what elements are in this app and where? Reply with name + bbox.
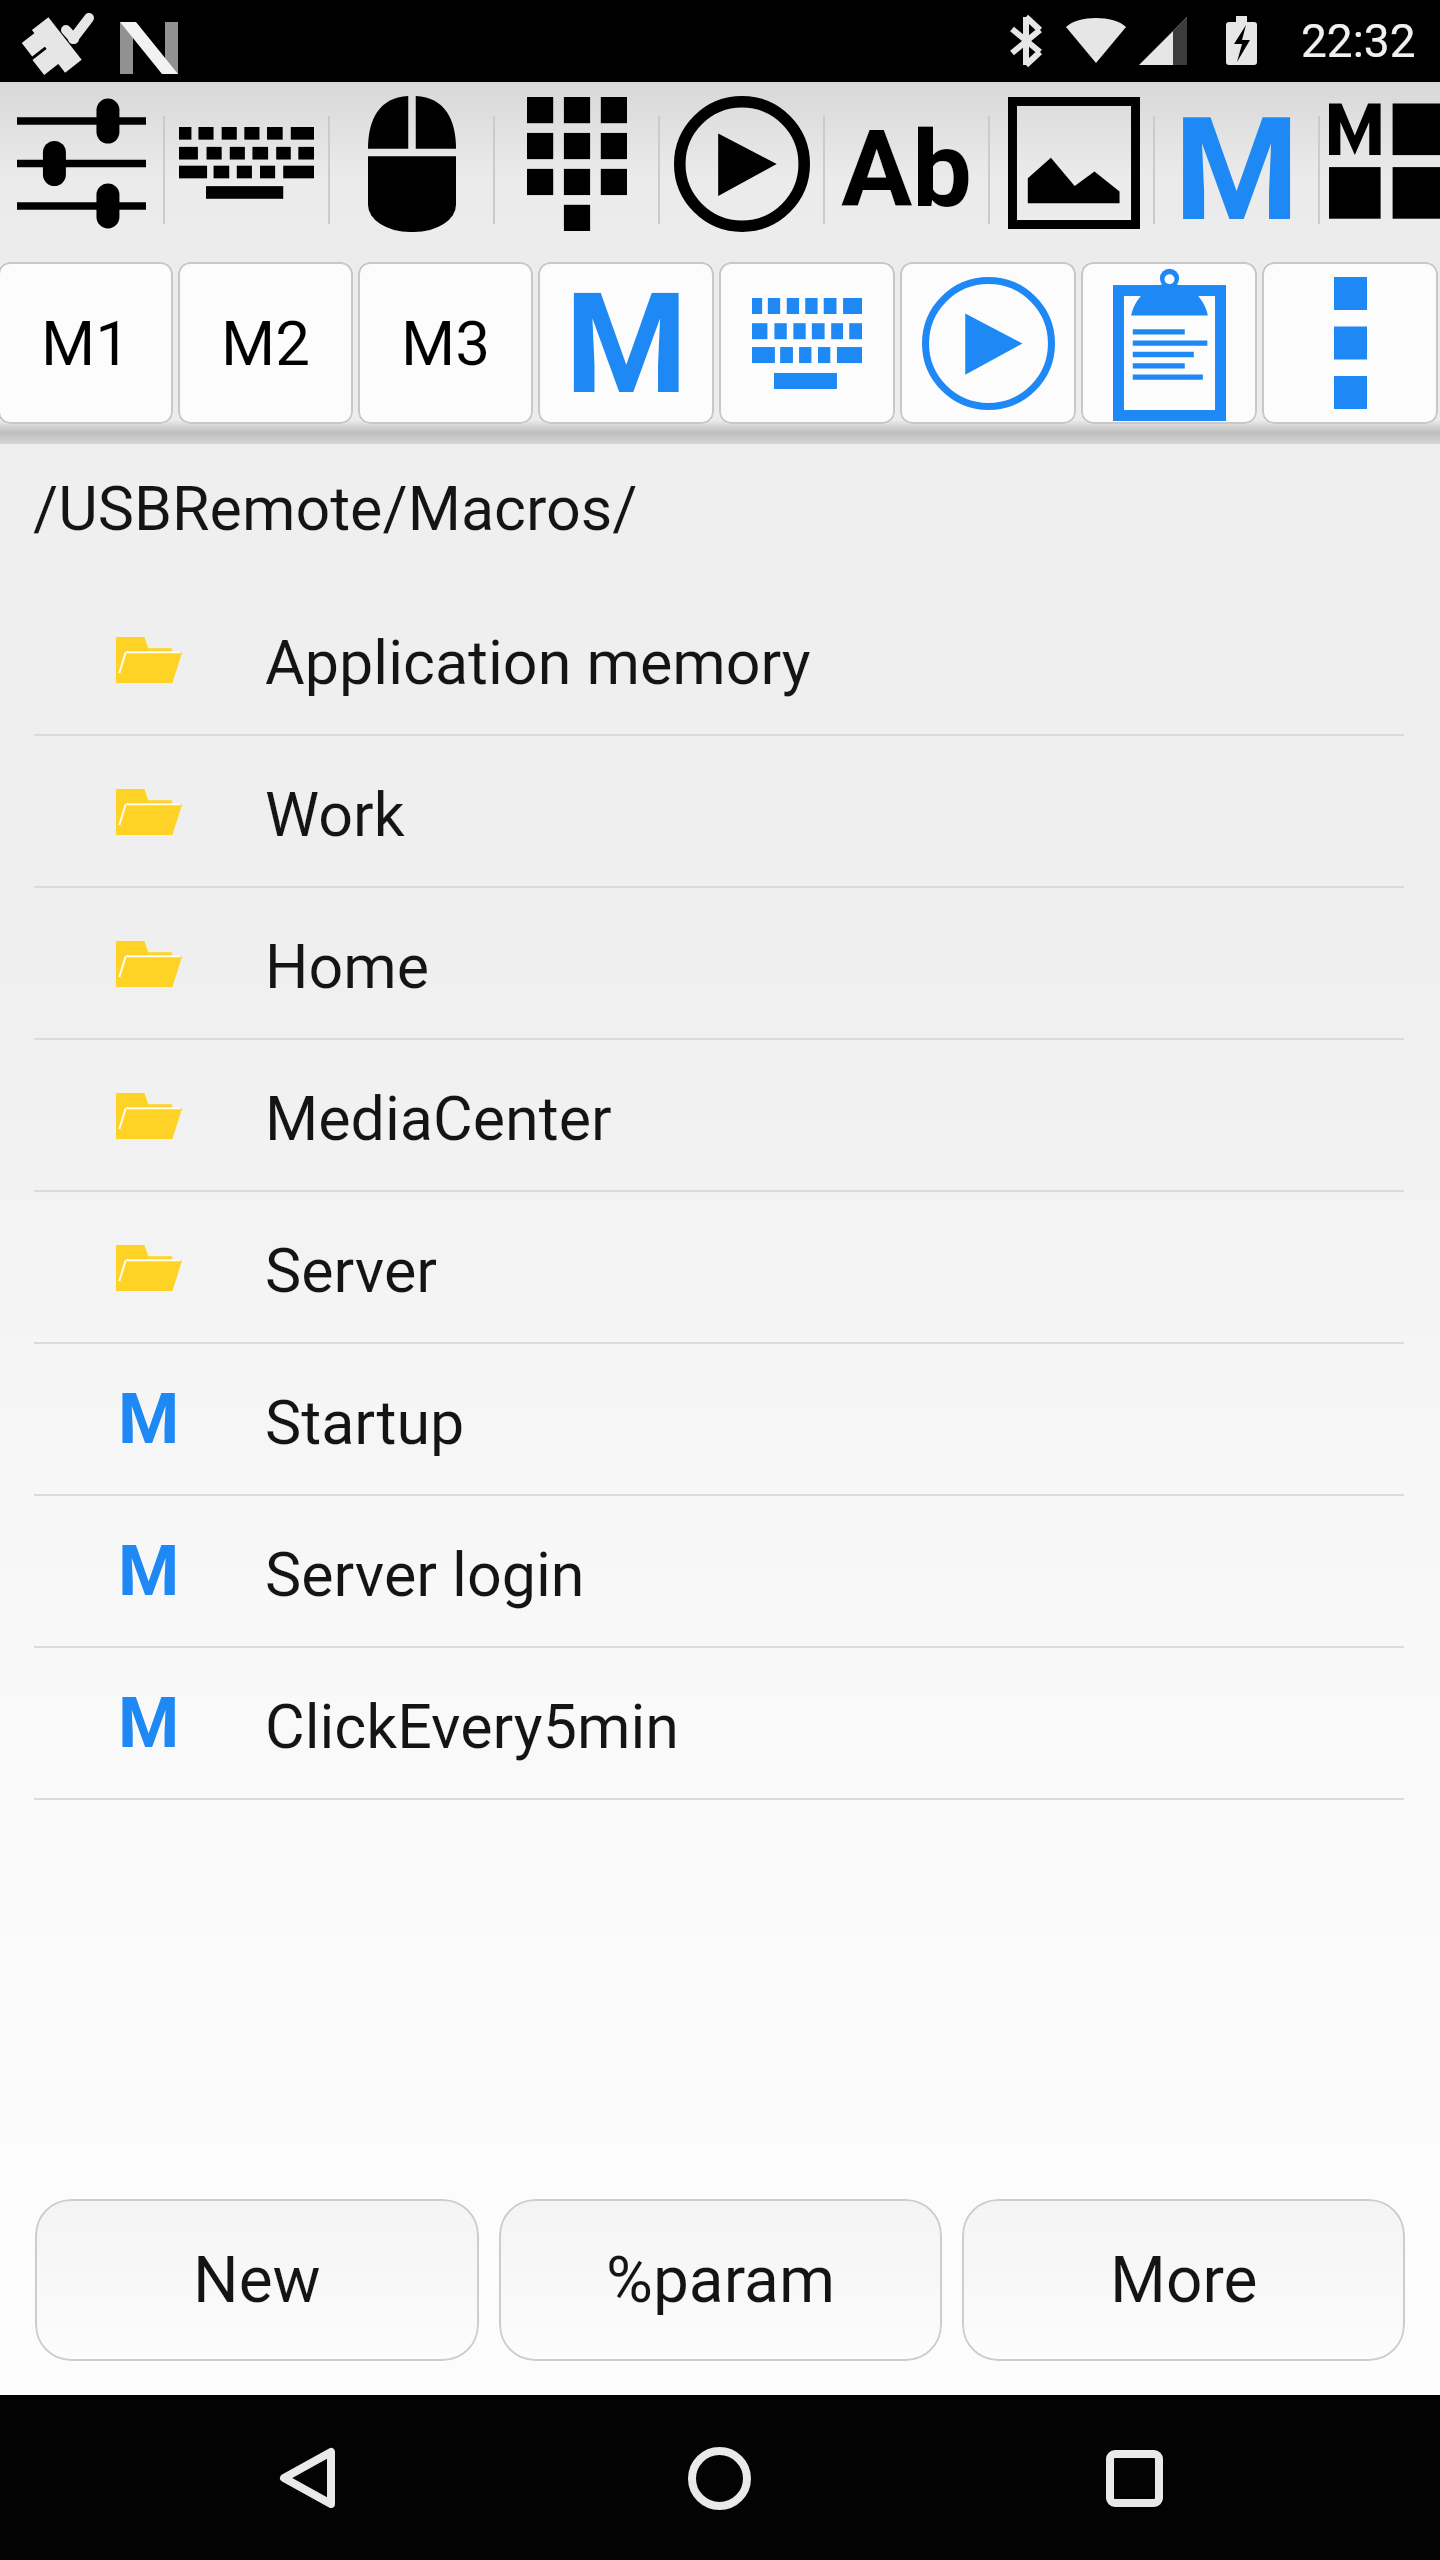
staticText: Home (265, 931, 430, 1002)
button[interactable]: Mouse (330, 82, 493, 258)
staticText: Application memory (265, 627, 811, 698)
button[interactable]: Clipboard (1081, 262, 1257, 424)
staticText: M (118, 1682, 180, 1764)
button[interactable]: Back (237, 2408, 377, 2548)
button[interactable]: Play (660, 82, 823, 258)
button[interactable]: M (0, 1344, 1440, 1496)
button[interactable]: M (0, 1648, 1440, 1800)
staticText: M (118, 1530, 180, 1612)
button[interactable]: M2 (178, 262, 353, 424)
button[interactable]: Ab (825, 82, 988, 258)
staticText: M3 (401, 307, 490, 380)
button[interactable]: Play (900, 262, 1076, 424)
staticText: /USBRemote/Macros/ (33, 473, 638, 544)
button[interactable]: Keyboard (719, 262, 895, 424)
staticText: %param (606, 2243, 835, 2318)
button[interactable]: New (35, 2199, 479, 2361)
button[interactable]: More options (1262, 262, 1438, 424)
staticText: Server login (265, 1539, 585, 1610)
button[interactable]: %param (499, 2199, 942, 2361)
button[interactable]: Server (0, 1192, 1440, 1344)
staticText: M2 (221, 307, 310, 380)
button[interactable]: M (0, 1496, 1440, 1648)
button[interactable]: Application memory (0, 584, 1440, 736)
button[interactable]: M1 (0, 262, 173, 424)
button[interactable]: MediaCenter (0, 1040, 1440, 1192)
staticText: Startup (265, 1387, 465, 1458)
button[interactable]: Work (0, 736, 1440, 888)
staticText: Ab (841, 108, 973, 232)
button[interactable]: Keyboard (165, 82, 328, 258)
staticText: MediaCenter (265, 1083, 612, 1154)
button[interactable]: Macro (538, 262, 714, 424)
staticText: Server (265, 1235, 437, 1306)
button[interactable]: Numpad (495, 82, 658, 258)
staticText: M1 (41, 307, 130, 380)
staticText: M (1174, 86, 1300, 254)
button[interactable]: Home (649, 2408, 789, 2548)
staticText: Work (265, 779, 405, 850)
staticText: M (118, 1378, 180, 1460)
button[interactable]: Recents (1064, 2408, 1204, 2548)
button[interactable]: Image (990, 82, 1153, 258)
button[interactable]: M3 (358, 262, 533, 424)
staticText: New (193, 2243, 321, 2318)
button[interactable]: Settings (0, 82, 163, 258)
button[interactable]: Macro (1155, 82, 1318, 258)
staticText: M (565, 262, 688, 424)
staticText: ClickEvery5min (265, 1691, 679, 1762)
button[interactable]: Home (0, 888, 1440, 1040)
button[interactable]: More (962, 2199, 1405, 2361)
button[interactable]: Macro grid (1320, 82, 1440, 258)
staticText: 22:32 (1301, 14, 1416, 68)
staticText: More (1110, 2243, 1258, 2318)
